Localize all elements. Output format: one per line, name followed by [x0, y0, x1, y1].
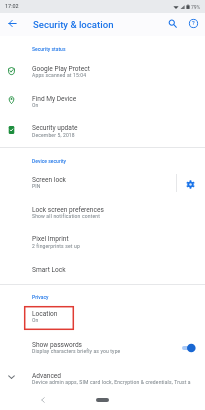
staticText: Security & location: [33, 19, 114, 30]
staticText: Show all notification content: [32, 213, 100, 219]
button[interactable]: Smart Lock: [0, 260, 205, 282]
button[interactable]: Location: [0, 303, 205, 333]
staticText: Pixel Imprint: [32, 235, 69, 243]
staticText: Security status: [32, 46, 66, 52]
button[interactable]: Advanced: [0, 366, 205, 396]
button[interactable]: Screen lock settings: [178, 171, 203, 197]
staticText: Screen lock: [32, 176, 66, 184]
button[interactable]: Back: [2, 13, 23, 34]
staticText: Privacy: [32, 294, 49, 300]
staticText: Display characters briefly as you type: [32, 348, 121, 354]
button[interactable]: Pixel Imprint: [0, 230, 205, 260]
staticText: Device admin apps, SIM card lock, Encryp…: [32, 379, 191, 385]
button[interactable]: Show passwords: [0, 334, 205, 364]
button[interactable]: Find My Device: [0, 90, 205, 120]
button[interactable]: Help: [183, 13, 204, 34]
staticText: Location: [32, 310, 58, 318]
staticText: PIN: [32, 183, 41, 189]
button[interactable]: Home: [89, 391, 115, 408]
button[interactable]: Search: [162, 13, 183, 34]
staticText: On: [32, 102, 39, 108]
button[interactable]: Google Play Protect: [0, 60, 205, 90]
staticText: Security update: [32, 124, 78, 132]
button[interactable]: Security update: [0, 119, 205, 149]
staticText: Apps scanned at 15:04: [32, 72, 87, 78]
staticText: On: [32, 317, 39, 323]
button[interactable]: Back: [34, 391, 51, 408]
staticText: Lock screen preferences: [32, 206, 104, 214]
staticText: Find My Device: [32, 95, 77, 103]
staticText: December 5, 2018: [32, 132, 75, 138]
staticText: 17:02: [5, 3, 19, 9]
staticText: 79%: [191, 4, 201, 10]
button[interactable]: Screen lock: [0, 171, 205, 201]
button[interactable]: Lock screen preferences: [0, 201, 205, 231]
staticText: Device security: [32, 158, 67, 164]
staticText: ?: [192, 20, 195, 27]
staticText: Smart Lock: [32, 266, 66, 274]
staticText: Advanced: [32, 372, 62, 380]
staticText: Show passwords: [32, 341, 83, 349]
staticText: Google Play Protect: [32, 65, 90, 73]
staticText: 2 fingerprints set up: [32, 243, 80, 249]
button[interactable]: Show passwords toggle: [176, 336, 202, 359]
